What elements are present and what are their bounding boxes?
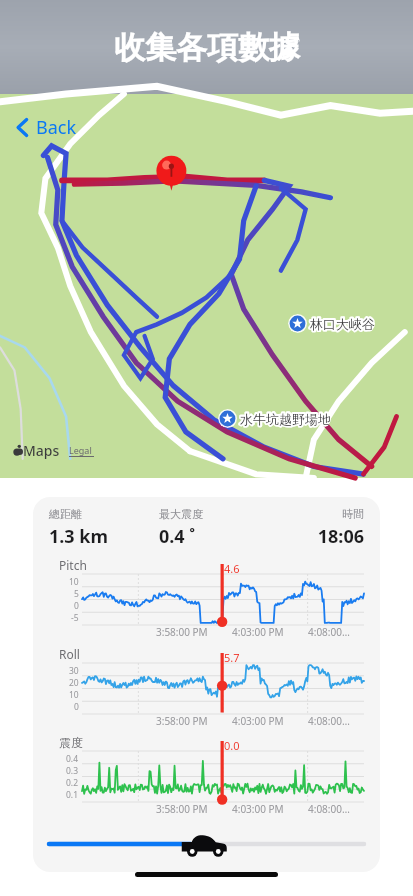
staticText: 5.7	[224, 650, 240, 665]
staticText: 最大震度	[159, 507, 270, 521]
staticText: Roll	[59, 646, 80, 662]
staticText: 0	[74, 701, 79, 712]
staticText: 總距離	[49, 507, 159, 521]
button[interactable]: Playback position	[49, 832, 364, 856]
staticText: 4:08:00…	[308, 802, 350, 816]
staticText: Pitch	[59, 557, 87, 573]
staticText: 3:58:00 PM	[156, 714, 208, 728]
staticText: 1.3 km	[49, 524, 159, 549]
button[interactable]: Back	[12, 112, 81, 143]
button[interactable]: 最大震度	[159, 507, 270, 549]
staticText: 4:08:00…	[308, 714, 350, 728]
staticText: 林口大峽谷	[310, 316, 375, 332]
staticText: 0.4	[66, 753, 79, 765]
staticText: Back	[36, 115, 77, 140]
staticText: 4:08:00…	[308, 625, 350, 639]
staticText: 4:03:00 PM	[232, 625, 284, 639]
staticText: 震度	[59, 735, 83, 750]
staticText: 20	[69, 677, 79, 689]
button[interactable]: 水牛坑越野場地	[218, 409, 331, 428]
staticText: 水牛坑越野場地	[240, 411, 331, 427]
staticText: 5	[74, 588, 79, 600]
staticText: 18:06	[270, 524, 364, 549]
staticText: 0.4 ˚	[159, 524, 270, 549]
staticText: -5	[71, 612, 79, 623]
staticText: 收集各項數據	[114, 28, 300, 67]
button[interactable]: 總距離	[49, 507, 159, 549]
staticText: Maps	[23, 441, 60, 460]
staticText: 時間	[270, 507, 364, 521]
staticText: 10	[69, 576, 79, 588]
staticText: 30	[69, 665, 79, 677]
staticText: Legal	[69, 444, 92, 456]
button[interactable]: 林口大峽谷	[288, 314, 375, 333]
staticText: 0	[74, 600, 79, 612]
staticText: 0.0	[224, 738, 240, 753]
staticText: 4.6	[224, 561, 240, 576]
staticText: 10	[69, 689, 79, 701]
staticText: 0.2	[66, 777, 79, 789]
staticText: 0.3	[66, 765, 79, 777]
staticText: 4:03:00 PM	[232, 714, 284, 728]
staticText: 3:58:00 PM	[156, 802, 208, 816]
staticText: 3:58:00 PM	[156, 625, 208, 639]
staticText: 4:03:00 PM	[232, 802, 284, 816]
button[interactable]: 時間	[270, 507, 364, 549]
staticText: 水牛坑越野場地	[240, 411, 331, 427]
staticText: 林口大峽谷	[310, 316, 375, 332]
staticText: 0.1	[66, 789, 79, 800]
